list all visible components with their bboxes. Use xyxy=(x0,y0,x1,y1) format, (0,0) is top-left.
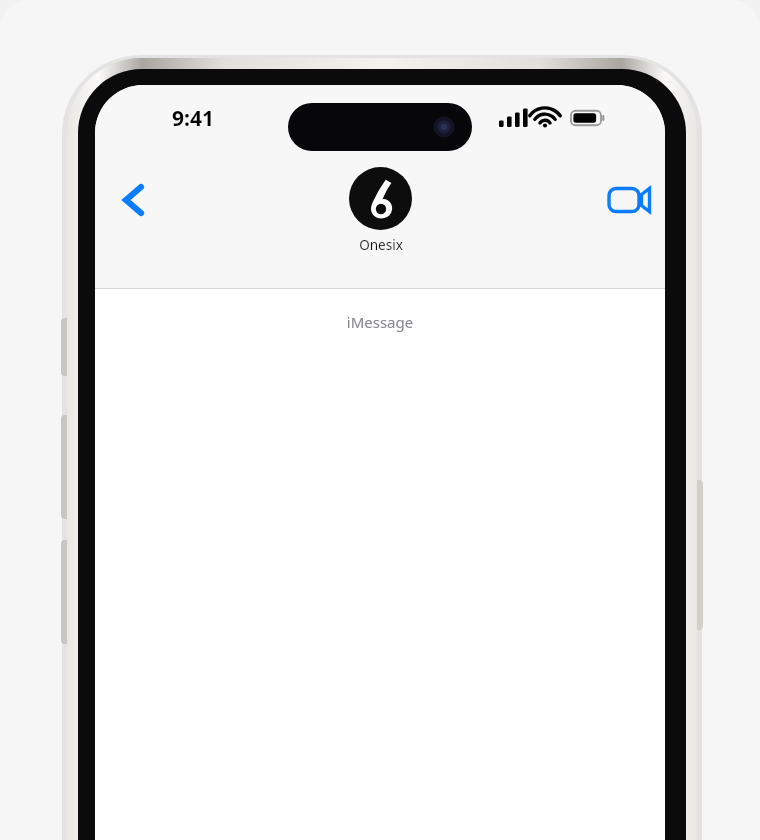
staticText: 9:41 xyxy=(172,104,214,133)
button[interactable]: Onesix xyxy=(349,167,412,248)
staticText: iMessage xyxy=(95,312,665,332)
staticText: Onesix xyxy=(359,236,403,254)
button[interactable]: FaceTime video call xyxy=(599,154,655,210)
button[interactable]: Back xyxy=(103,154,159,210)
